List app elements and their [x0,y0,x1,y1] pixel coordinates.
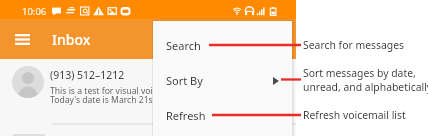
staticText: Sort messages by date, [303,66,416,80]
staticText: 10:06 [22,5,47,18]
button[interactable]: (913) 512–1212 [0,59,296,109]
staticText: Today's date is March 21st and it [50,94,182,106]
button[interactable]: Refresh [153,98,292,133]
button[interactable]: Search [153,28,292,63]
staticText: (913) 512–1212 [50,68,125,82]
button[interactable]: Open navigation drawer [6,23,38,55]
staticText: Sort By [166,73,203,88]
staticText: Refresh voicemail list [303,108,406,122]
staticText: This is a test for visual voicemail [50,85,179,97]
staticText: Inbox [52,30,91,49]
staticText: unread, and alphabetically [303,80,428,94]
button[interactable]: Sort By [153,63,292,98]
staticText: Refresh [166,108,206,123]
staticText: Search for messages [303,38,405,52]
staticText: Search [166,38,201,53]
